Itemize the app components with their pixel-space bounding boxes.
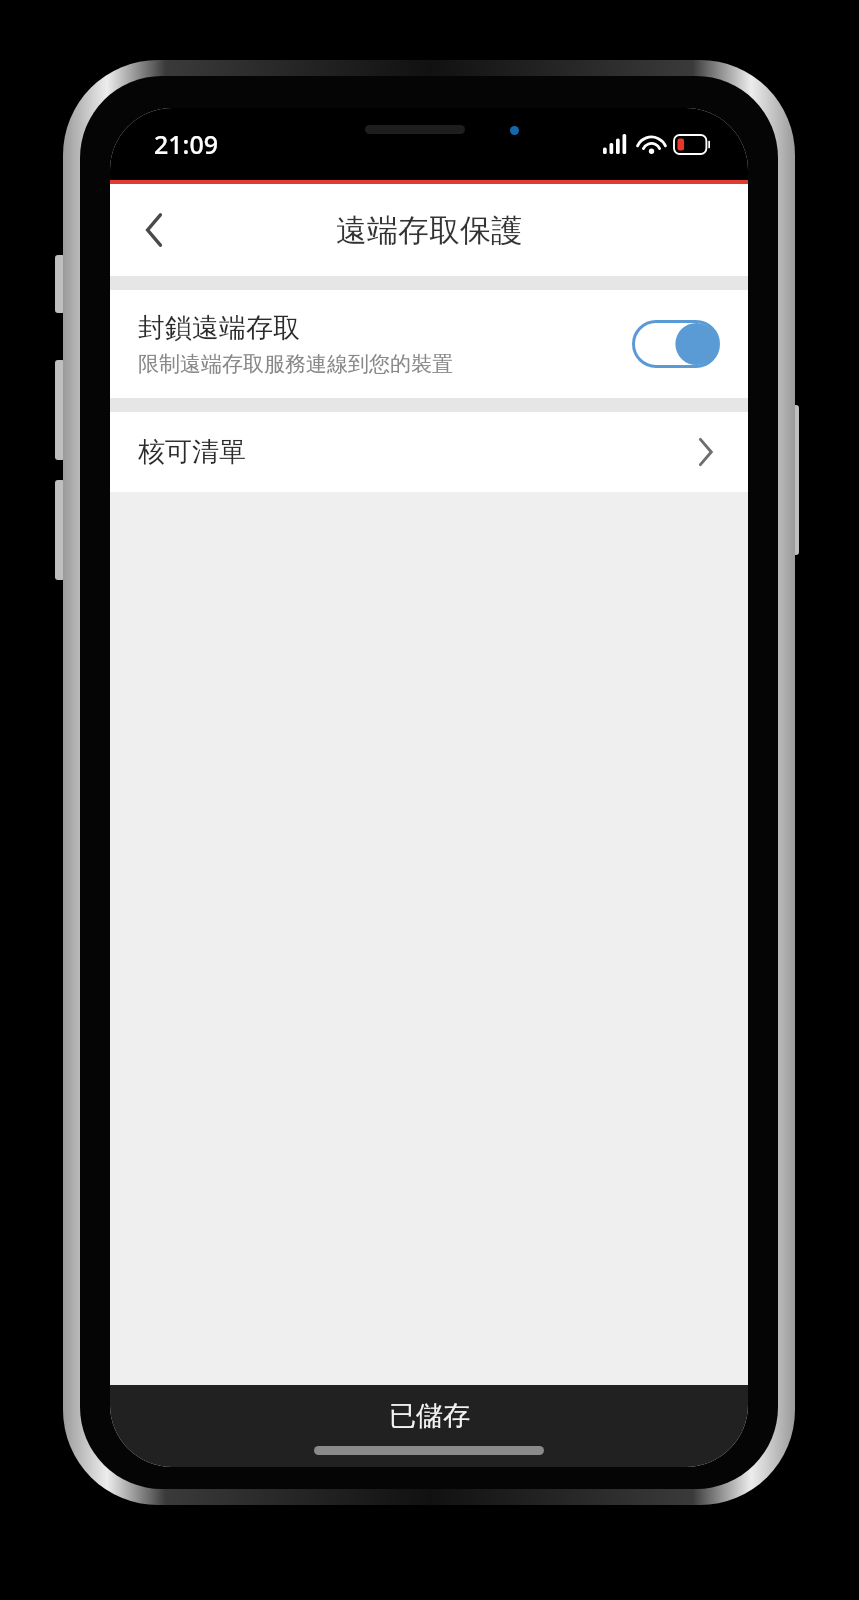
- button[interactable]: 封鎖遠端存取: [110, 290, 748, 398]
- staticText: 封鎖遠端存取: [138, 311, 300, 345]
- button[interactable]: 核可清單: [110, 412, 748, 492]
- button[interactable]: Block remote access toggle: [632, 320, 720, 368]
- staticText: 已儲存: [389, 1399, 470, 1433]
- staticText: 21:09: [154, 127, 219, 161]
- staticText: 遠端存取保護: [336, 211, 522, 250]
- staticText: 限制遠端存取服務連線到您的裝置: [138, 351, 453, 377]
- staticText: 核可清單: [138, 435, 697, 469]
- button[interactable]: Back: [110, 184, 198, 276]
